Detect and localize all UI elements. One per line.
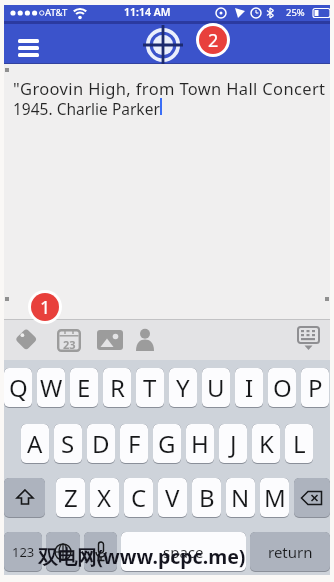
staticText: G [158,427,176,460]
button[interactable]: Y [169,368,197,408]
staticText: F [128,427,141,460]
staticText: 双电网(www.pcpc.me) [38,543,246,570]
staticText: space [163,542,204,562]
button[interactable]: U [202,368,230,408]
staticText: X [97,481,112,514]
staticText: 2 [208,28,219,53]
button[interactable] [134,328,156,352]
button[interactable]: J [219,424,247,464]
staticText: return [268,542,313,562]
button[interactable]: A [21,424,49,464]
button[interactable] [4,478,45,518]
button[interactable]: Z [56,478,85,518]
button[interactable]: M [260,478,289,518]
staticText: W [40,371,63,404]
button[interactable]: C [124,478,153,518]
button[interactable] [142,24,184,66]
staticText: S [61,427,75,460]
staticText: N [231,481,250,514]
button[interactable] [296,326,322,354]
button[interactable]: G [153,424,181,464]
button[interactable]: W [37,368,65,408]
staticText: L [293,427,306,460]
staticText: E [77,371,91,404]
button[interactable] [46,532,80,572]
button[interactable]: I [235,368,263,408]
staticText: H [191,427,209,460]
button[interactable]: 1 [28,290,62,324]
button[interactable]: K [252,424,280,464]
staticText: O [273,371,292,404]
button[interactable]: space [121,532,246,572]
button[interactable] [14,36,44,62]
staticText: K [259,427,274,460]
staticText: 11:14 AM [124,5,171,19]
button[interactable]: return [250,532,330,572]
staticText: 123 [12,543,35,561]
staticText: 1 [40,295,51,320]
button[interactable]: V [158,478,187,518]
button[interactable]: N [226,478,255,518]
button[interactable]: O [268,368,296,408]
staticText: 23 [63,337,76,352]
button[interactable]: X [90,478,119,518]
button[interactable]: E [70,368,98,408]
button[interactable] [57,329,82,352]
staticText: J [230,427,237,460]
staticText: AT&T [45,6,68,19]
button[interactable]: Q [4,368,32,408]
button[interactable]: H [186,424,214,464]
button[interactable] [294,478,330,518]
staticText: A [27,427,43,460]
staticText: M [264,481,286,514]
staticText: U [207,371,225,404]
staticText: I [245,371,254,404]
staticText: D [92,427,110,460]
button[interactable]: S [54,424,82,464]
staticText: R [110,371,125,404]
button[interactable]: 2 [196,23,230,57]
button[interactable] [13,326,40,352]
button[interactable] [84,532,117,572]
staticText: 1945. Charlie Parker [13,98,160,119]
staticText: T [143,371,157,404]
button[interactable]: D [87,424,115,464]
staticText: Y [176,371,190,404]
button[interactable] [4,64,330,319]
staticText: Q [9,371,28,404]
button[interactable]: L [285,424,313,464]
staticText: 25% [286,6,305,19]
staticText: "Groovin High, from Town Hall Concert [13,77,326,99]
button[interactable]: 123 [4,532,42,572]
button[interactable]: R [103,368,131,408]
button[interactable]: F [120,424,148,464]
button[interactable]: P [301,368,329,408]
staticText: Z [64,481,78,514]
staticText: B [199,481,215,514]
button[interactable] [97,330,124,351]
staticText: V [165,481,180,514]
staticText: C [131,481,147,514]
staticText: P [308,371,323,404]
button[interactable]: T [136,368,164,408]
button[interactable]: B [192,478,221,518]
